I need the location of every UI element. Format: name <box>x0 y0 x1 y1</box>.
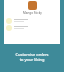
button[interactable] <box>6 17 58 24</box>
staticText: Customise orders to your liking <box>15 52 49 62</box>
staticText: Mango Sticky <box>23 11 42 15</box>
button[interactable] <box>6 24 58 31</box>
